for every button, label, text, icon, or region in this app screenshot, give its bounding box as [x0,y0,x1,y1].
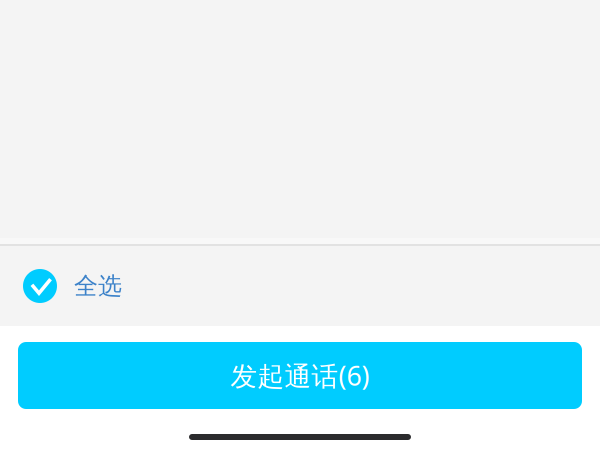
staticText: 发起通话(6) [230,358,369,393]
staticText: 全选 [74,271,122,301]
button[interactable]: 全选 [0,246,600,326]
button[interactable]: 发起通话(6) [18,342,582,409]
